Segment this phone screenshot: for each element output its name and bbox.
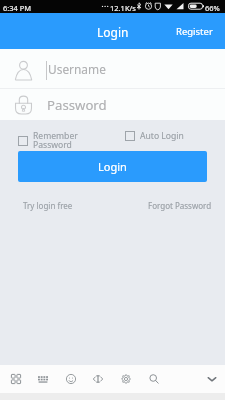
button[interactable]: Login [87,19,139,45]
button[interactable]: Username [0,49,225,88]
staticText: Forgot Password [148,200,212,211]
button[interactable]: Register [166,19,225,44]
staticText: 6:34 PM [3,3,32,13]
button[interactable]: Settings [113,367,139,391]
staticText: Register [176,25,213,38]
button[interactable]: Login [18,151,207,182]
staticText: Password [47,96,107,114]
staticText: Login [98,159,127,174]
staticText: Username [48,61,106,77]
button[interactable]: Apps [3,367,29,391]
button[interactable]: Auto Login [121,127,188,145]
staticText: 12.1K/s [110,3,136,13]
button[interactable]: Emoji [58,367,84,391]
button[interactable]: Hide keyboard [199,367,225,391]
button[interactable]: Password [0,89,225,120]
button[interactable]: Try login free [18,196,78,215]
staticText: 66% [205,3,220,13]
button[interactable]: Search [141,367,167,391]
button[interactable]: Clipboard [85,367,111,391]
button[interactable]: Keyboard [30,367,56,391]
staticText: Try login free [23,200,73,211]
staticText: Login [97,24,129,40]
button[interactable]: Remember Password [14,127,82,154]
staticText: Auto Login [140,130,184,142]
staticText: Remember Password [33,130,78,151]
button[interactable]: Forgot Password [143,196,219,215]
